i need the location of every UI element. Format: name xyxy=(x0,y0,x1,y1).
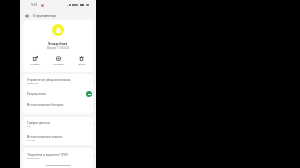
button[interactable]: Остановить xyxy=(47,52,70,69)
button[interactable]: Автозапуск xyxy=(23,164,93,168)
staticText: Управление уведомлениями xyxy=(27,78,71,82)
button[interactable]: Использование батареи xyxy=(23,99,93,111)
staticText: "Картинка в картинке" (PIP) xyxy=(27,153,69,157)
staticText: 221 МБ xyxy=(27,139,36,142)
staticText: Snapchat xyxy=(48,41,68,47)
staticText: 9:41 xyxy=(31,3,38,7)
button[interactable]: Отправить xyxy=(23,52,47,69)
button[interactable]: "Картинка в картинке" (PIP) xyxy=(23,148,93,164)
staticText: Версия 11.58.0.45 xyxy=(47,46,70,50)
button[interactable]: Управление уведомлениями xyxy=(23,74,93,88)
staticText: Разрешения xyxy=(27,92,46,96)
button[interactable]: Удалить xyxy=(70,52,93,69)
button[interactable]: Разрешения xyxy=(23,88,93,99)
staticText: Разрешено xyxy=(27,157,40,160)
staticText: Удалить xyxy=(78,63,86,66)
staticText: Остановить xyxy=(53,63,65,66)
staticText: 0 Б xyxy=(27,125,31,128)
staticText: Использование батареи xyxy=(27,103,64,107)
button[interactable]: Назад xyxy=(22,11,31,20)
staticText: О приложении xyxy=(33,14,56,18)
staticText: Отправить xyxy=(30,63,41,66)
staticText: Включено xyxy=(27,82,39,85)
button[interactable]: Трафик данных xyxy=(23,117,93,131)
button[interactable]: Использование памяти xyxy=(23,131,93,145)
staticText: Использование памяти xyxy=(27,135,63,139)
staticText: Трафик данных xyxy=(27,121,51,125)
